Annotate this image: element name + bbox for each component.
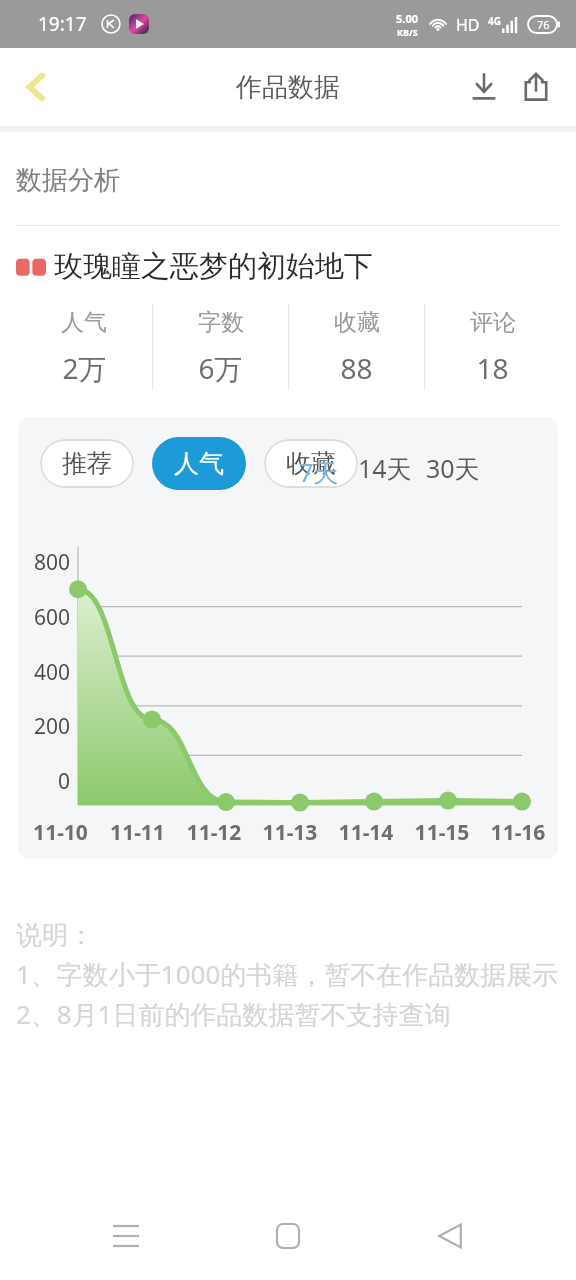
button[interactable]: Back	[8, 59, 64, 115]
staticText: 19:17	[38, 11, 87, 37]
staticText: 11-10	[22, 818, 99, 847]
button[interactable]: Recent apps	[90, 1200, 162, 1272]
button[interactable]: Download	[458, 61, 510, 113]
staticText: 1、字数小于1000的书籍，暂不在作品数据展示	[16, 956, 559, 992]
staticText: 说明：	[16, 919, 94, 952]
button[interactable]: Home	[252, 1200, 324, 1272]
staticText: 76	[537, 17, 550, 32]
staticText: 2万	[62, 349, 107, 387]
staticText: 字数	[198, 308, 244, 337]
staticText: 11-15	[404, 818, 480, 847]
staticText: 200	[18, 712, 70, 741]
staticText: 数据分析	[16, 164, 120, 197]
staticText: HD	[456, 14, 480, 36]
staticText: 11-14	[328, 818, 404, 847]
staticText: 4G	[488, 14, 501, 28]
button[interactable]: 30天	[426, 451, 480, 485]
button[interactable]: 推荐	[40, 439, 134, 488]
staticText: 5.00	[396, 11, 418, 26]
button[interactable]: Back	[414, 1200, 486, 1272]
staticText: 18	[476, 349, 509, 387]
staticText: 0	[18, 767, 70, 796]
staticText: 收藏	[286, 448, 336, 479]
staticText: 作品数据	[236, 71, 340, 104]
staticText: 11-13	[252, 818, 328, 847]
button[interactable]: 14天	[358, 451, 412, 485]
staticText: 88	[340, 349, 373, 387]
staticText: 11-16	[480, 818, 556, 847]
staticText: 6万	[198, 349, 243, 387]
staticText: 人气	[174, 448, 224, 479]
button[interactable]: 人气	[152, 437, 246, 490]
button[interactable]: 收藏	[264, 439, 358, 488]
staticText: 11-11	[99, 818, 176, 847]
staticText: 收藏	[334, 308, 380, 337]
staticText: 11-12	[176, 818, 252, 847]
staticText: 推荐	[62, 448, 112, 479]
staticText: 评论	[470, 308, 516, 337]
staticText: 400	[18, 658, 70, 687]
staticText: KB/S	[397, 26, 418, 38]
staticText: 7天	[299, 455, 339, 489]
staticText: 2、8月1日前的作品数据暂不支持查询	[16, 996, 451, 1032]
staticText: 600	[18, 603, 70, 632]
staticText: 玫瑰瞳之恶梦的初始地下	[54, 248, 373, 285]
button[interactable]: Share	[510, 61, 562, 113]
staticText: 人气	[61, 308, 107, 337]
staticText: 800	[18, 548, 70, 577]
